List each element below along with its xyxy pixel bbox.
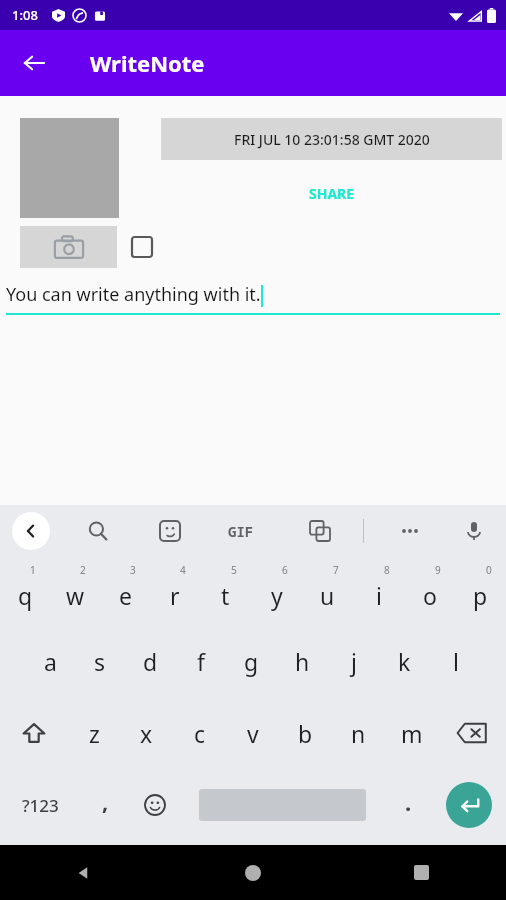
button[interactable]: FRI JUL 10 23:01:58 GMT 2020 <box>161 118 502 160</box>
staticText: r <box>170 580 180 611</box>
staticText: a <box>44 646 57 677</box>
staticText: WriteNote <box>90 48 205 78</box>
staticText: o <box>423 580 437 611</box>
button[interactable]: 7 <box>302 557 353 625</box>
button[interactable]: b <box>279 697 332 769</box>
button[interactable]: 3 <box>100 557 150 625</box>
button[interactable]: Backspace <box>438 697 506 769</box>
staticText: 5 <box>231 563 237 577</box>
staticText: b <box>298 718 313 749</box>
button[interactable]: GIF <box>228 522 254 541</box>
button[interactable]: Enter <box>446 782 492 828</box>
staticText: 0 <box>486 563 492 577</box>
staticText: 6 <box>282 563 288 577</box>
staticText: p <box>473 580 488 611</box>
button[interactable]: 5 <box>200 557 251 625</box>
button[interactable]: 1 <box>0 557 50 625</box>
staticText: 2 <box>80 563 86 577</box>
staticText: l <box>453 646 459 677</box>
button[interactable]: Checkbox <box>127 232 157 262</box>
button[interactable]: Shift <box>0 697 68 769</box>
button[interactable]: Search <box>78 511 118 551</box>
button[interactable]: 4 <box>150 557 200 625</box>
staticText: h <box>295 646 310 677</box>
button[interactable]: Voice input <box>454 511 494 551</box>
staticText: , <box>102 786 109 816</box>
button[interactable]: ?123 <box>0 769 80 841</box>
staticText: SHARE <box>309 184 355 203</box>
staticText: i <box>376 580 382 611</box>
button[interactable]: z <box>68 697 120 769</box>
staticText: y <box>271 580 283 611</box>
button[interactable]: m <box>385 697 438 769</box>
staticText: n <box>351 718 366 749</box>
staticText: z <box>89 718 100 749</box>
button[interactable]: Stickers <box>150 511 190 551</box>
staticText: c <box>194 718 206 749</box>
staticText: q <box>18 580 33 611</box>
button[interactable]: SHARE <box>161 176 502 210</box>
button[interactable]: j <box>328 625 379 697</box>
button[interactable]: More options <box>390 511 430 551</box>
staticText: s <box>94 646 106 677</box>
button[interactable]: , <box>80 769 130 841</box>
button[interactable]: Emoji <box>130 769 180 841</box>
button[interactable]: 9 <box>404 557 455 625</box>
staticText: ?123 <box>22 794 59 817</box>
button[interactable]: Translate <box>300 511 340 551</box>
staticText: FRI JUL 10 23:01:58 GMT 2020 <box>234 130 430 149</box>
button[interactable]: g <box>226 625 277 697</box>
staticText: x <box>140 718 153 749</box>
staticText: f <box>197 646 205 677</box>
staticText: 1:08 <box>12 6 38 24</box>
button[interactable]: v <box>226 697 279 769</box>
staticText: j <box>351 646 357 677</box>
button[interactable]: Recent apps <box>337 845 506 900</box>
staticText: You can write anything with it. <box>6 282 261 307</box>
staticText: . <box>405 787 412 817</box>
staticText: 4 <box>180 563 186 577</box>
staticText: v <box>247 718 259 749</box>
button[interactable]: 6 <box>251 557 302 625</box>
staticText: w <box>66 580 85 611</box>
button[interactable]: c <box>173 697 226 769</box>
button[interactable]: Back <box>10 39 58 87</box>
staticText: d <box>143 646 158 677</box>
staticText: t <box>221 580 230 611</box>
button[interactable]: l <box>430 625 481 697</box>
button[interactable]: a <box>25 625 75 697</box>
button[interactable]: h <box>277 625 328 697</box>
button[interactable]: x <box>120 697 173 769</box>
button[interactable]: 8 <box>353 557 404 625</box>
staticText: 1 <box>30 563 36 577</box>
button[interactable]: n <box>332 697 385 769</box>
button[interactable]: 0 <box>455 557 506 625</box>
button[interactable]: k <box>379 625 430 697</box>
button[interactable]: You can write anything with it. <box>6 282 500 315</box>
staticText: e <box>119 580 132 611</box>
staticText: 9 <box>435 563 441 577</box>
staticText: 3 <box>130 563 136 577</box>
button[interactable]: d <box>125 625 175 697</box>
button[interactable]: f <box>175 625 226 697</box>
button[interactable]: 2 <box>50 557 100 625</box>
staticText: g <box>244 646 259 677</box>
button[interactable]: . <box>384 769 432 841</box>
staticText: 7 <box>333 563 339 577</box>
staticText: k <box>398 646 411 677</box>
button[interactable]: s <box>75 625 125 697</box>
staticText: u <box>320 580 335 611</box>
button[interactable]: Back to keyboard <box>12 512 50 550</box>
button[interactable]: Home <box>168 845 337 900</box>
staticText: m <box>401 718 423 749</box>
button[interactable]: Back <box>0 845 168 900</box>
staticText: 8 <box>384 563 390 577</box>
button[interactable]: Take photo <box>20 226 117 268</box>
